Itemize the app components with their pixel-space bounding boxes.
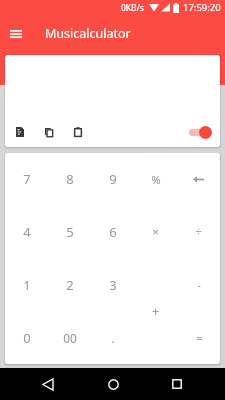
button[interactable]: Copy (39, 122, 59, 142)
staticText: 1 (23, 276, 31, 294)
button[interactable]: 2 (48, 258, 91, 311)
button[interactable]: 8 (48, 153, 91, 205)
button[interactable]: 5 (48, 205, 91, 258)
staticText: . (111, 329, 115, 347)
button[interactable]: 9 (91, 153, 134, 205)
button[interactable]: = (177, 311, 220, 364)
staticText: Musicalculator (45, 25, 131, 42)
staticText: 0KB/s (121, 2, 144, 14)
staticText: % (151, 172, 161, 187)
button[interactable]: Back (32, 368, 64, 400)
button[interactable]: Navigation menu (0, 18, 32, 50)
staticText: 5 (66, 223, 74, 241)
staticText: 3 (109, 276, 117, 294)
button[interactable]: 6 (91, 205, 134, 258)
button[interactable]: 3 (91, 258, 134, 311)
button[interactable]: + (134, 258, 177, 364)
staticText: 00 (63, 330, 77, 346)
staticText: 8 (66, 170, 74, 188)
button[interactable]: % (134, 153, 177, 205)
button[interactable]: Notes (10, 122, 30, 142)
staticText: + (152, 302, 160, 320)
staticText: × (152, 224, 159, 240)
staticText: 17:59:20 (183, 1, 221, 14)
button[interactable]: 1 (5, 258, 48, 311)
staticText: 6 (109, 223, 117, 241)
button[interactable]: Home (97, 368, 129, 400)
button[interactable]: Recent apps (161, 368, 193, 400)
staticText: 7 (23, 170, 31, 188)
button[interactable]: 7 (5, 153, 48, 205)
button[interactable]: 4 (5, 205, 48, 258)
staticText: 4 (23, 223, 31, 241)
staticText: 2 (66, 276, 74, 294)
staticText: - (197, 278, 201, 292)
button[interactable]: 00 (48, 311, 91, 364)
staticText: 9 (109, 170, 117, 188)
staticText: = (196, 331, 202, 345)
staticText: 0 (23, 329, 31, 347)
staticText: ÷ (195, 224, 202, 240)
button[interactable]: Backspace (177, 153, 220, 205)
button[interactable] (134, 311, 177, 364)
button[interactable]: ÷ (177, 205, 220, 258)
button[interactable]: × (134, 205, 177, 258)
button[interactable]: 0 (5, 311, 48, 364)
button[interactable]: Paste (68, 122, 88, 142)
button[interactable]: Toggle sound (188, 122, 216, 142)
